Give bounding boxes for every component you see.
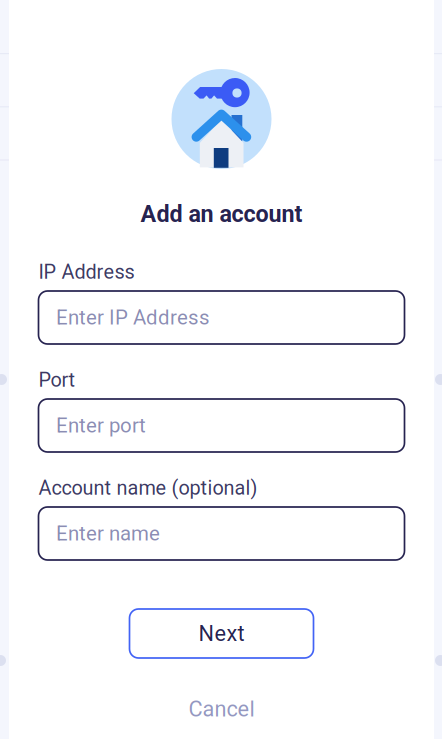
staticText: IP Address (38, 260, 134, 284)
button[interactable]: Next (129, 609, 313, 658)
staticText: Next (198, 621, 244, 646)
button[interactable]: Enter name (38, 507, 404, 560)
staticText: Cancel (188, 696, 254, 722)
staticText: Enter IP Address (56, 305, 210, 329)
staticText: Account name (optional) (38, 476, 257, 500)
button[interactable]: Enter port (38, 399, 404, 452)
staticText: Enter name (56, 521, 160, 545)
button[interactable]: Enter IP Address (38, 291, 404, 344)
button[interactable]: Cancel (188, 698, 254, 720)
staticText: Enter port (56, 413, 146, 437)
staticText: Add an account (140, 200, 302, 228)
staticText: Port (38, 368, 75, 392)
